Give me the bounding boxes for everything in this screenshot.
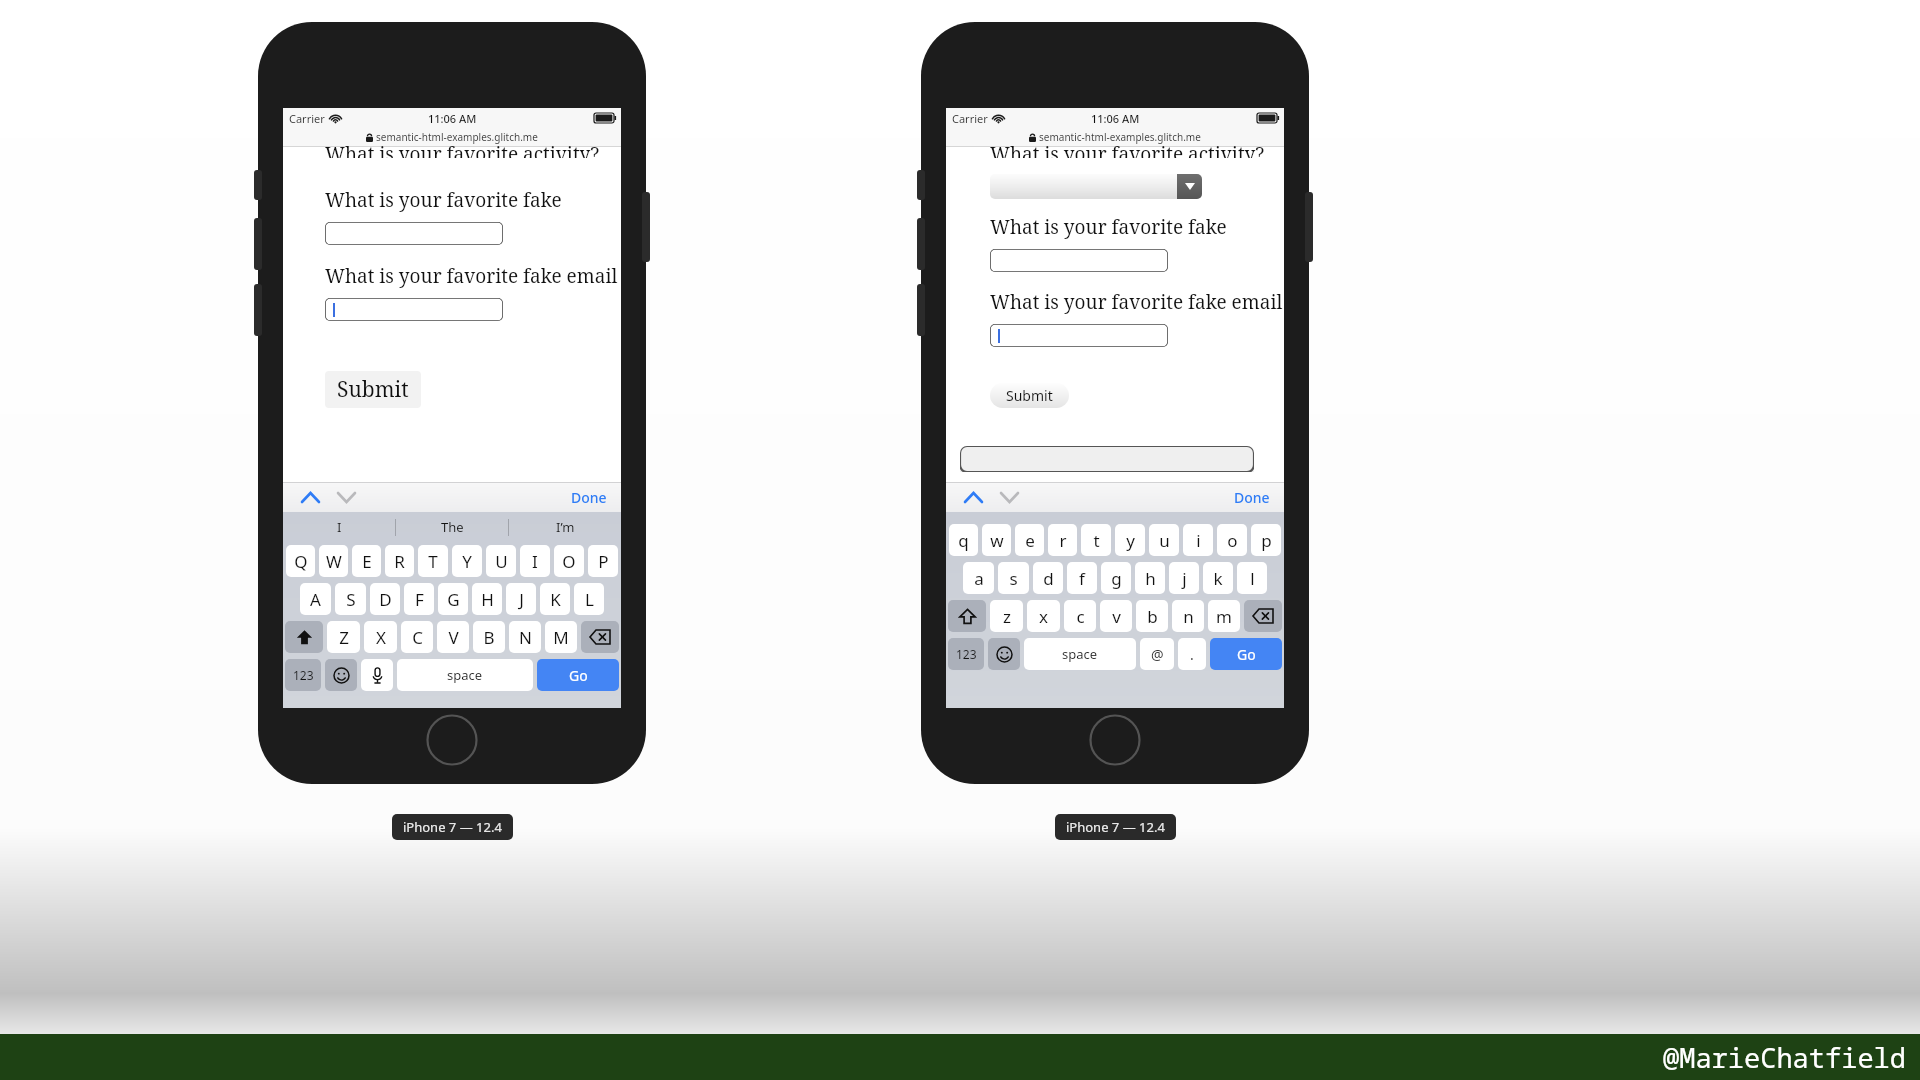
staticText: 123 <box>956 646 977 662</box>
button[interactable]: N <box>509 621 541 653</box>
staticText: semantic-html-examples.glitch.me <box>1039 130 1201 144</box>
button[interactable]: Dictation <box>361 659 393 691</box>
button[interactable] <box>325 222 503 245</box>
button[interactable]: I <box>520 545 550 577</box>
button[interactable]: Go <box>1210 638 1282 670</box>
button[interactable]: space <box>1024 638 1136 670</box>
button[interactable]: o <box>1217 524 1247 556</box>
button[interactable]: Shift <box>948 600 986 632</box>
button[interactable]: The <box>396 512 508 542</box>
button[interactable]: c <box>1064 600 1096 632</box>
button[interactable] <box>990 324 1168 347</box>
button[interactable]: G <box>438 583 468 615</box>
button[interactable]: Backspace <box>581 621 619 653</box>
button[interactable]: b <box>1136 600 1168 632</box>
button[interactable]: M <box>545 621 577 653</box>
button[interactable]: I’m <box>509 512 621 542</box>
button[interactable]: p <box>1251 524 1281 556</box>
button[interactable]: Backspace <box>1244 600 1282 632</box>
staticText: space <box>447 666 483 684</box>
button[interactable]: F <box>404 583 434 615</box>
button[interactable]: r <box>1048 524 1077 556</box>
button[interactable]: Select favorite activity <box>990 174 1202 199</box>
button[interactable]: @ <box>1140 638 1174 670</box>
button[interactable]: Z <box>327 621 360 653</box>
button[interactable]: l <box>1237 562 1267 594</box>
staticText: E <box>362 550 372 573</box>
button[interactable]: Emoji <box>325 659 357 691</box>
button[interactable]: E <box>352 545 381 577</box>
button[interactable]: z <box>990 600 1023 632</box>
button[interactable]: k <box>1203 562 1233 594</box>
button[interactable]: n <box>1172 600 1204 632</box>
staticText: K <box>550 588 561 611</box>
button[interactable]: Go <box>537 659 619 691</box>
button[interactable]: 123 <box>285 659 321 691</box>
button[interactable]: T <box>418 545 448 577</box>
button[interactable]: V <box>437 621 469 653</box>
button[interactable]: W <box>319 545 348 577</box>
button[interactable]: u <box>1149 524 1179 556</box>
button[interactable]: i <box>1183 524 1213 556</box>
button[interactable]: P <box>588 545 618 577</box>
button[interactable]: A <box>300 583 331 615</box>
button[interactable]: B <box>473 621 505 653</box>
button[interactable]: s <box>998 562 1029 594</box>
button[interactable] <box>325 298 503 321</box>
button[interactable]: Next field <box>333 486 359 508</box>
button[interactable]: space <box>397 659 533 691</box>
staticText: What is your favorite fake phone number? <box>990 214 1284 240</box>
staticText: Z <box>339 626 349 649</box>
staticText: o <box>1227 529 1238 552</box>
staticText: R <box>394 550 405 573</box>
staticText: V <box>448 626 459 649</box>
staticText: n <box>1183 605 1194 628</box>
button[interactable]: g <box>1101 562 1131 594</box>
button[interactable] <box>990 249 1168 272</box>
button[interactable]: e <box>1015 524 1044 556</box>
button[interactable]: R <box>385 545 414 577</box>
button[interactable]: . <box>1178 638 1206 670</box>
button[interactable]: O <box>554 545 584 577</box>
staticText: semantic-html-examples.glitch.me <box>376 130 538 144</box>
button[interactable]: Q <box>286 545 315 577</box>
button[interactable]: w <box>982 524 1011 556</box>
button[interactable]: Done <box>1220 484 1284 511</box>
button[interactable]: m <box>1208 600 1240 632</box>
button[interactable]: H <box>472 583 502 615</box>
button[interactable]: x <box>1027 600 1060 632</box>
staticText: A <box>310 588 321 611</box>
button[interactable]: L <box>574 583 604 615</box>
button[interactable]: j <box>1169 562 1199 594</box>
button[interactable]: D <box>370 583 400 615</box>
button[interactable]: Done <box>557 484 621 511</box>
button[interactable]: Y <box>452 545 482 577</box>
button[interactable]: f <box>1067 562 1097 594</box>
staticText: s <box>1009 567 1018 590</box>
button[interactable]: v <box>1100 600 1132 632</box>
button[interactable]: C <box>401 621 433 653</box>
button[interactable]: t <box>1081 524 1111 556</box>
button[interactable]: Shift <box>285 621 323 653</box>
button[interactable]: Submit <box>325 371 421 408</box>
button[interactable]: U <box>486 545 516 577</box>
staticText: Y <box>462 550 472 573</box>
button[interactable]: y <box>1115 524 1145 556</box>
button[interactable]: Emoji <box>988 638 1020 670</box>
button[interactable]: K <box>540 583 570 615</box>
button[interactable]: d <box>1033 562 1063 594</box>
button[interactable]: S <box>335 583 366 615</box>
staticText: What is your favorite activity? <box>325 141 600 158</box>
button[interactable]: Previous field <box>960 486 986 508</box>
button[interactable]: Next field <box>996 486 1022 508</box>
button[interactable]: q <box>949 524 978 556</box>
button[interactable]: h <box>1135 562 1165 594</box>
button[interactable]: a <box>963 562 994 594</box>
button[interactable]: J <box>506 583 536 615</box>
button[interactable]: 123 <box>948 638 984 670</box>
button[interactable]: X <box>364 621 397 653</box>
button[interactable]: Submit <box>990 383 1069 408</box>
button[interactable]: Previous field <box>297 486 323 508</box>
staticText: B <box>483 626 495 649</box>
button[interactable]: I <box>283 512 395 542</box>
